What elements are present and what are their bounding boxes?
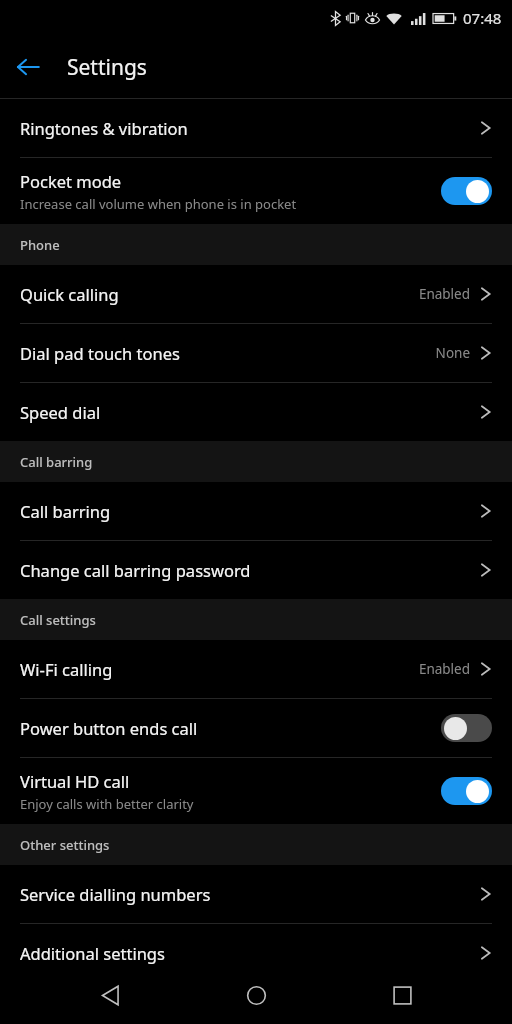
staticText: Call barring <box>20 500 111 522</box>
staticText: Increase call volume when phone is in po… <box>20 195 297 213</box>
staticText: None <box>435 344 470 362</box>
staticText: Power button ends call <box>20 717 198 739</box>
button[interactable]: Wi-Fi calling <box>0 640 512 698</box>
button[interactable]: Pocket mode <box>0 158 512 224</box>
staticText: Change call barring password <box>20 559 251 581</box>
button[interactable]: Quick calling <box>0 265 512 323</box>
staticText: Other settings <box>20 836 110 854</box>
button[interactable]: Speed dial <box>0 383 512 441</box>
button[interactable]: Home <box>220 966 292 1024</box>
button[interactable]: Recents <box>366 966 438 1024</box>
button[interactable]: Ringtones & vibration <box>0 99 512 157</box>
button[interactable]: Toggle on <box>441 177 492 205</box>
button[interactable]: Toggle off <box>441 714 492 742</box>
staticText: Settings <box>67 53 147 82</box>
staticText: Pocket mode <box>20 170 122 192</box>
staticText: Virtual HD call <box>20 770 130 792</box>
staticText: Additional settings <box>20 942 165 964</box>
staticText: 07:48 <box>463 8 502 28</box>
button[interactable]: Toggle on <box>441 777 492 805</box>
button[interactable]: Back <box>0 39 56 95</box>
button[interactable]: Virtual HD call <box>0 758 512 824</box>
button[interactable]: Service dialling numbers <box>0 865 512 923</box>
button[interactable]: Additional settings <box>0 924 512 982</box>
staticText: Enabled <box>418 660 470 678</box>
button[interactable]: Dial pad touch tones <box>0 324 512 382</box>
staticText: Service dialling numbers <box>20 883 211 905</box>
staticText: Wi-Fi calling <box>20 658 113 680</box>
staticText: Ringtones & vibration <box>20 117 188 139</box>
staticText: Enabled <box>418 285 470 303</box>
staticText: Quick calling <box>20 283 119 305</box>
staticText: Dial pad touch tones <box>20 342 180 364</box>
button[interactable]: Back <box>74 966 146 1024</box>
button[interactable]: Power button ends call <box>0 699 512 757</box>
staticText: Enjoy calls with better clarity <box>20 795 194 813</box>
staticText: Phone <box>20 236 60 254</box>
staticText: Call settings <box>20 611 96 629</box>
button[interactable]: Call barring <box>0 482 512 540</box>
staticText: Speed dial <box>20 401 101 423</box>
button[interactable]: Change call barring password <box>0 541 512 599</box>
staticText: Call barring <box>20 453 93 471</box>
